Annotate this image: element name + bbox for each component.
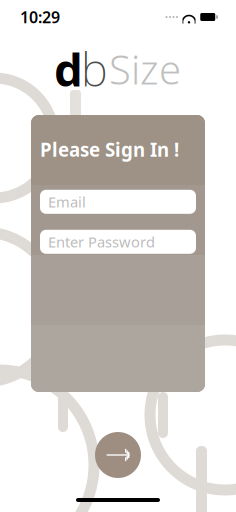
staticText: b [81, 39, 108, 99]
staticText: Enter Password [48, 232, 155, 252]
staticText: Email [48, 192, 86, 212]
staticText: Size [109, 42, 181, 95]
staticText: d [54, 39, 83, 99]
staticText: 10:29 [20, 6, 60, 28]
button[interactable]: Enter Password [40, 230, 196, 254]
staticText: Please Sign In ! [40, 137, 179, 162]
button[interactable]: Email [40, 190, 196, 214]
button[interactable]: Continue [95, 432, 141, 478]
